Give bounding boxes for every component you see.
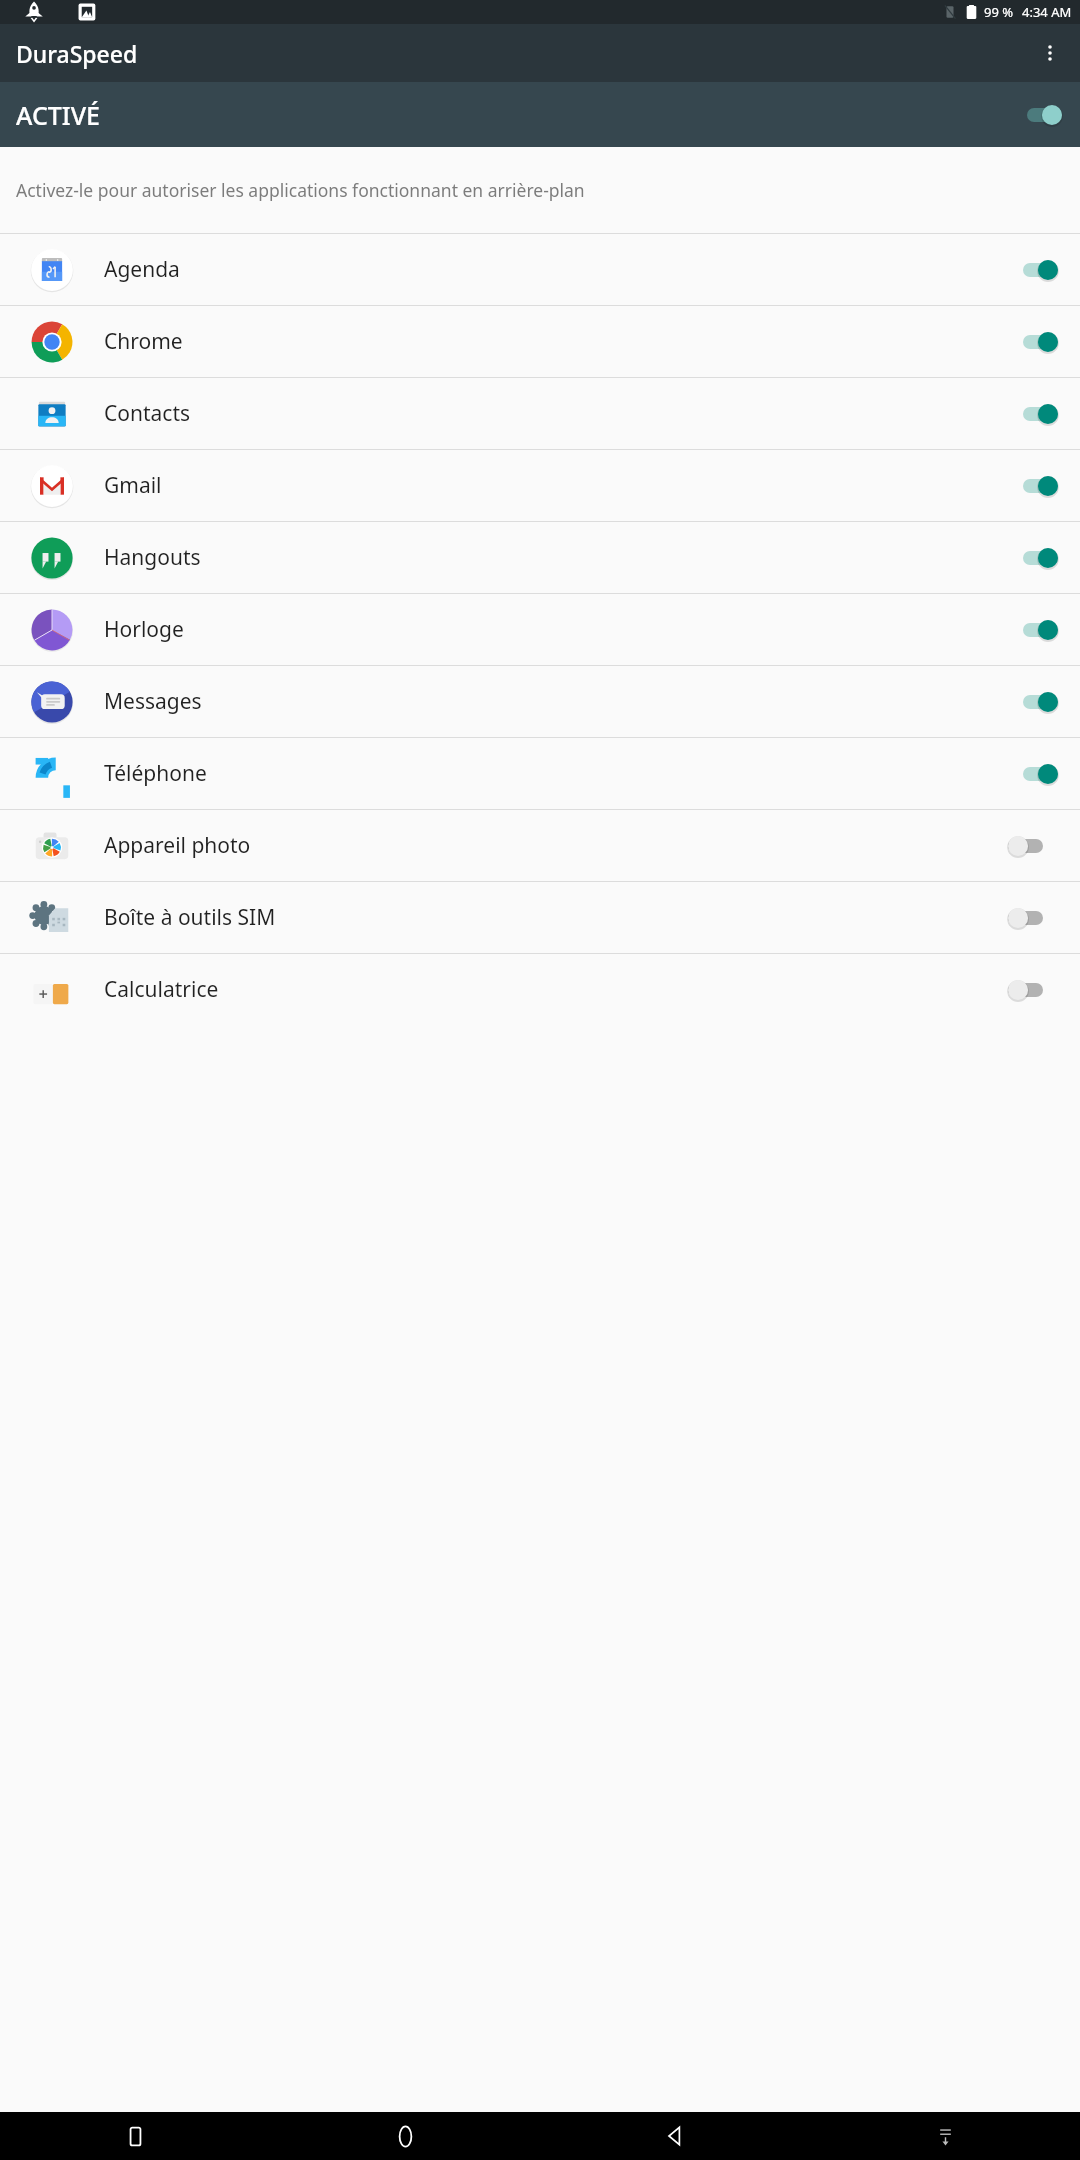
staticText: Hangouts xyxy=(104,543,1000,572)
staticText: Chrome xyxy=(104,327,1000,356)
staticText: ACTIVÉ xyxy=(16,98,1012,132)
staticText: Contacts xyxy=(104,399,1000,428)
button[interactable]: Chrome xyxy=(0,306,1080,377)
staticText: Activez-le pour autoriser les applicatio… xyxy=(16,178,585,202)
button[interactable]: Boîte à outils SIM xyxy=(0,882,1080,953)
button[interactable]: More options xyxy=(1026,29,1074,77)
staticText: Horloge xyxy=(104,615,1000,644)
staticText: Boîte à outils SIM xyxy=(104,903,1000,932)
button[interactable]: Agenda xyxy=(0,234,1080,305)
button[interactable]: Horloge xyxy=(0,594,1080,665)
button[interactable]: Calculatrice xyxy=(0,954,1080,1025)
button[interactable]: Contacts xyxy=(0,378,1080,449)
staticText: 99 % xyxy=(984,3,1014,21)
button[interactable]: Recent apps xyxy=(0,2112,270,2160)
staticText: Gmail xyxy=(104,471,1000,500)
button[interactable]: Appareil photo xyxy=(0,810,1080,881)
button[interactable]: Téléphone xyxy=(0,738,1080,809)
staticText: Téléphone xyxy=(104,759,1000,788)
staticText: Agenda xyxy=(104,255,1000,284)
button[interactable]: Back xyxy=(540,2112,810,2160)
staticText: DuraSpeed xyxy=(16,38,138,69)
staticText: 4:34 AM xyxy=(1022,3,1072,21)
button[interactable]: Home xyxy=(270,2112,540,2160)
button[interactable]: Gmail xyxy=(0,450,1080,521)
staticText: Appareil photo xyxy=(104,831,1000,860)
staticText: Messages xyxy=(104,687,1000,716)
button[interactable]: Messages xyxy=(0,666,1080,737)
button[interactable]: Hangouts xyxy=(0,522,1080,593)
button[interactable]: ACTIVÉ xyxy=(0,82,1080,147)
staticText: Calculatrice xyxy=(104,975,1000,1004)
button[interactable]: Hide keyboard xyxy=(810,2112,1080,2160)
